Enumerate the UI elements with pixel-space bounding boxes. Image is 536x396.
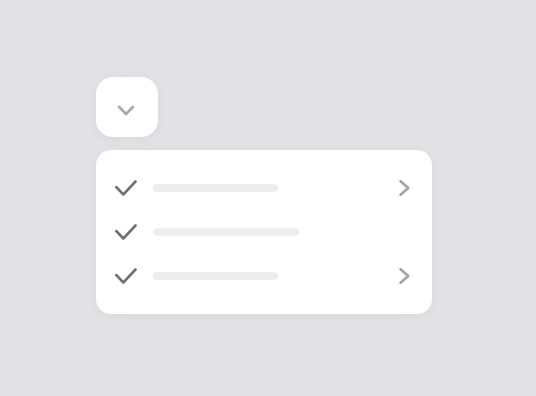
button[interactable]: Collapse [96, 77, 158, 137]
button[interactable]: Open item [115, 166, 413, 210]
button[interactable]: Open item [115, 254, 413, 298]
